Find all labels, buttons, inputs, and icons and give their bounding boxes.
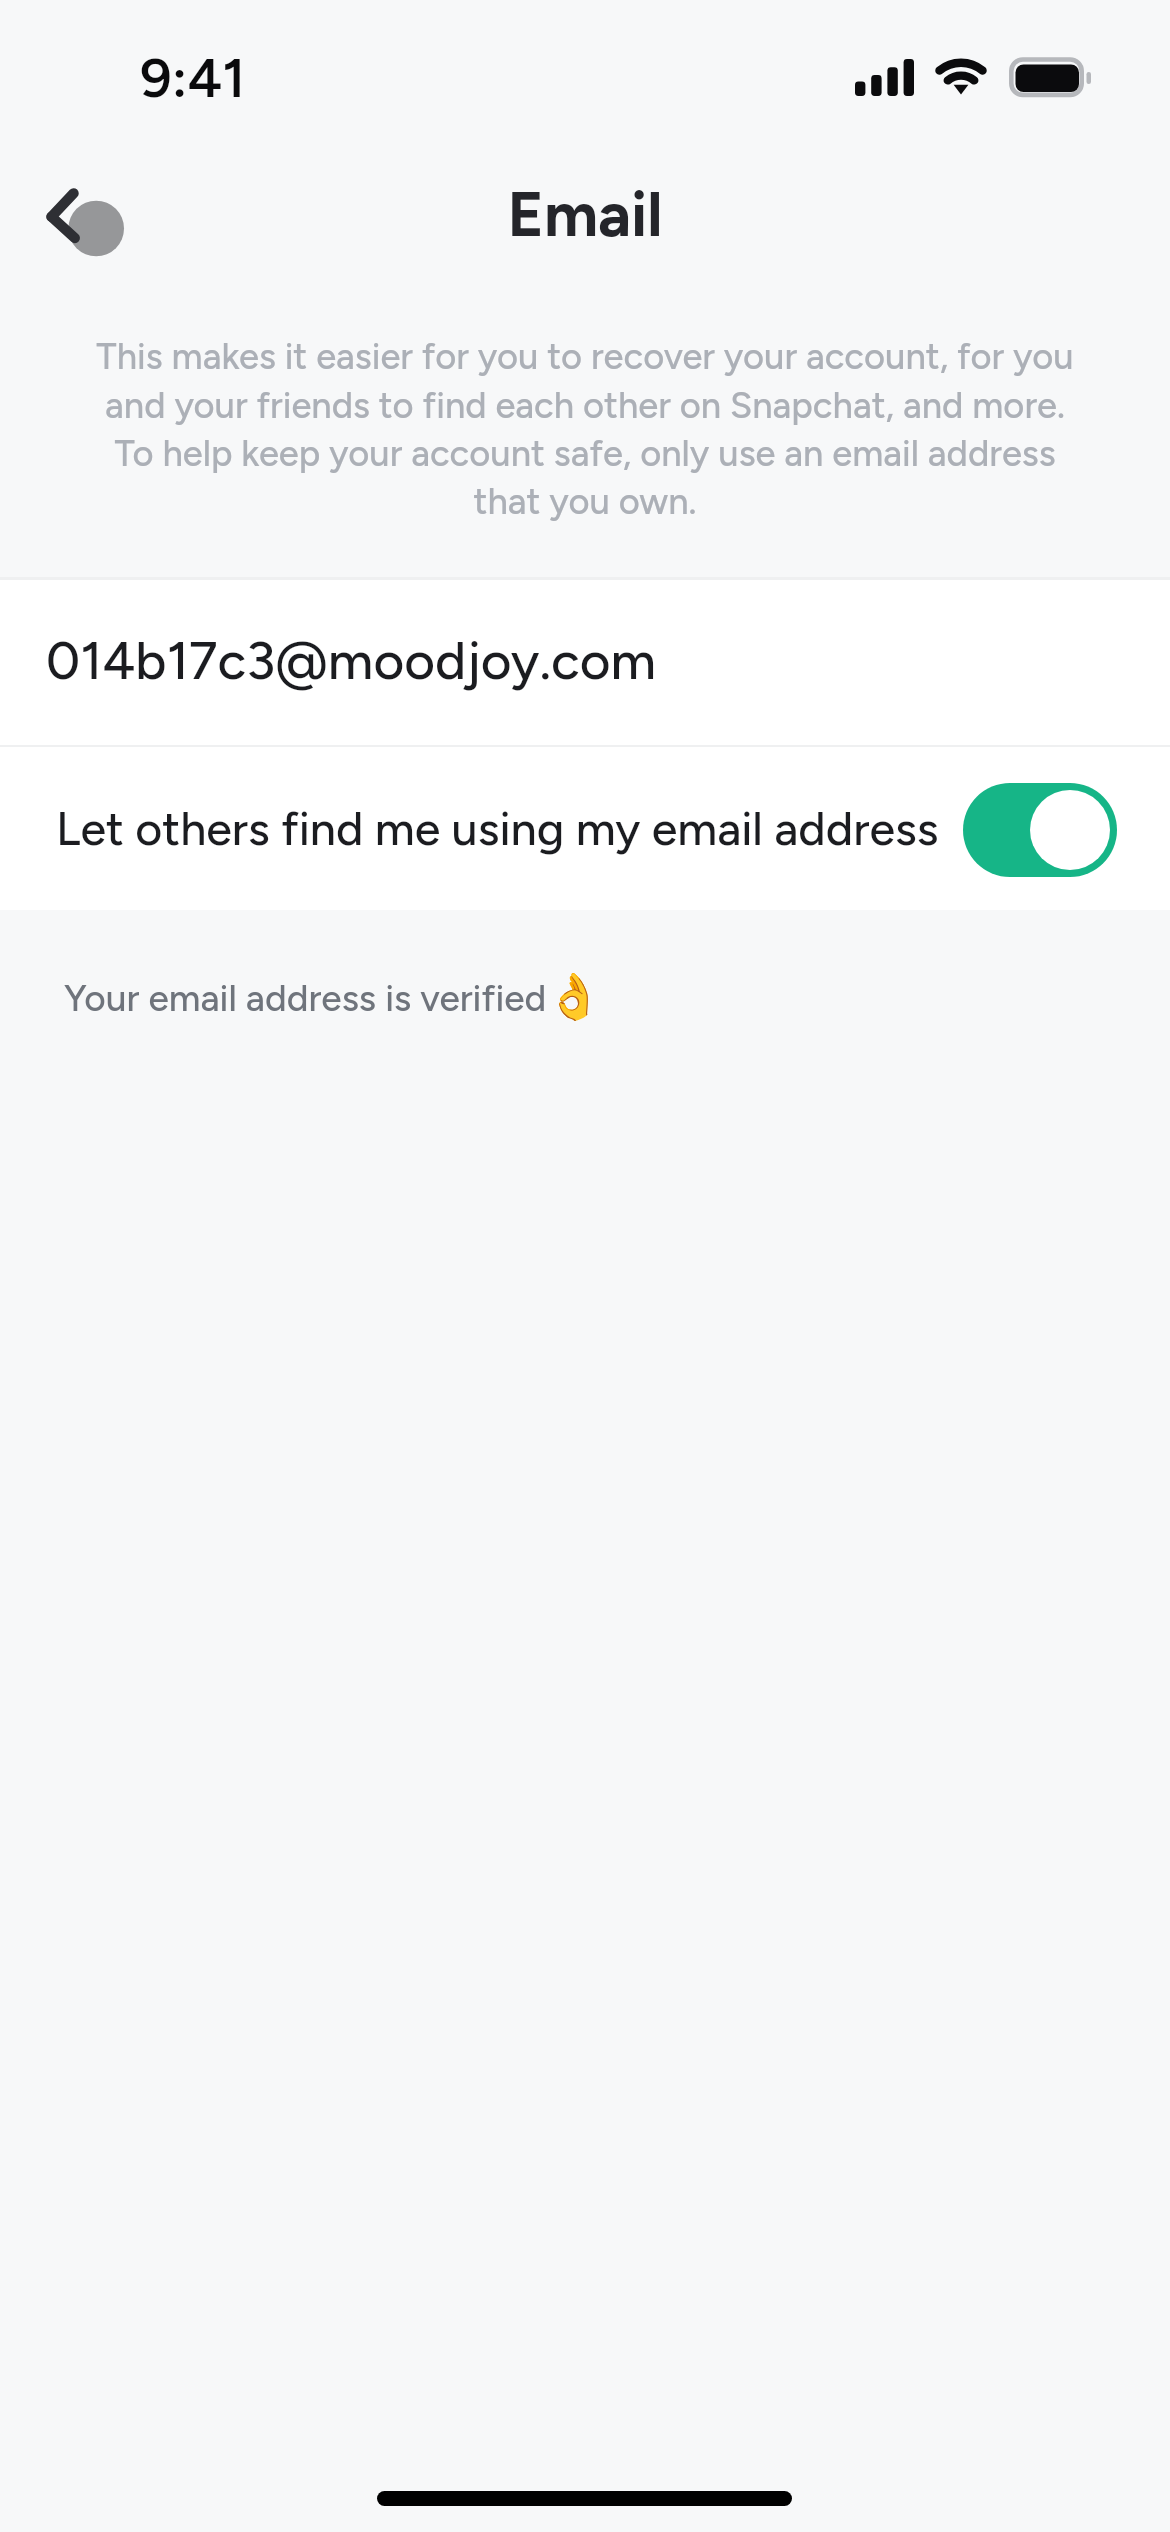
- button[interactable]: Back: [26, 170, 166, 310]
- staticText: This makes it easier for you to recover …: [88, 335, 1082, 523]
- staticText: 014b17c3@moodjoy.com: [46, 629, 657, 693]
- staticText: Your email address is verified: [64, 976, 547, 1020]
- button[interactable]: 014b17c3@moodjoy.com: [0, 580, 1170, 746]
- staticText: Let others find me using my email addres…: [56, 801, 939, 857]
- staticText: Email: [0, 177, 1170, 251]
- staticText: 9:41: [140, 44, 246, 110]
- button[interactable]: Let others find me using my email addres…: [0, 747, 1170, 910]
- button[interactable]: Let others find me using my email addres…: [963, 783, 1117, 877]
- staticText: 👌: [546, 970, 603, 1023]
